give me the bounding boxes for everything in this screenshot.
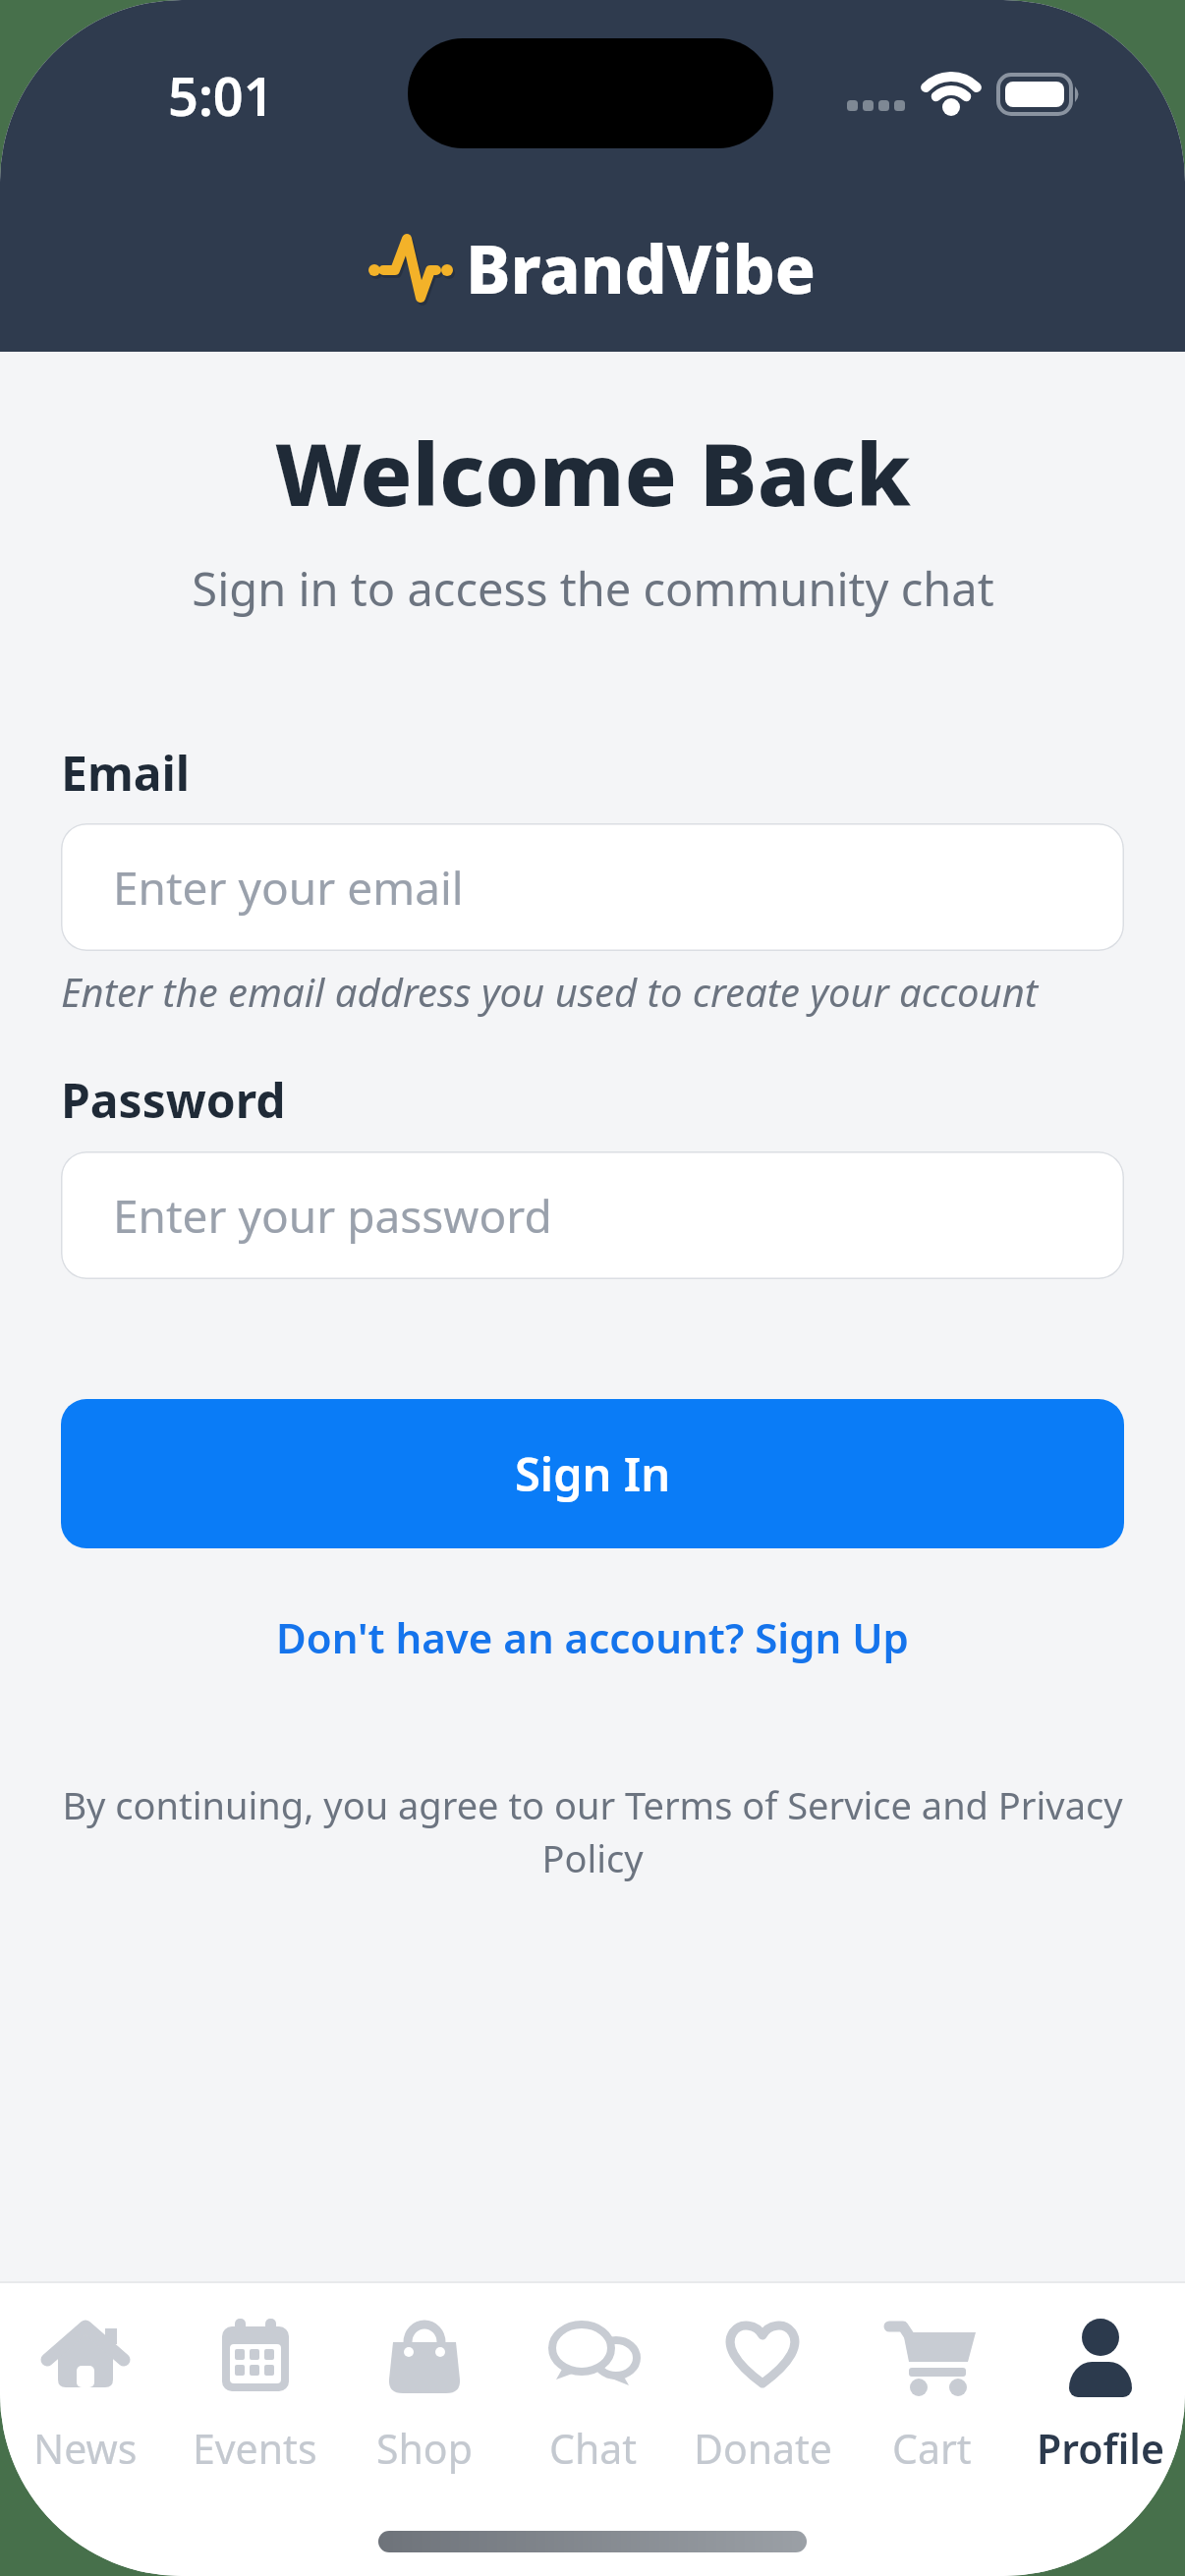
- staticText: Password: [61, 1068, 286, 1127]
- staticText: Welcome Back: [275, 414, 911, 532]
- button[interactable]: Enter your password: [61, 1151, 1124, 1279]
- staticText: BrandVibe: [466, 222, 817, 313]
- staticText: Donate: [694, 2421, 832, 2476]
- staticText: Email: [61, 741, 191, 800]
- staticText: By continuing, you agree to our Terms of…: [62, 1779, 1123, 1830]
- button[interactable]: Events: [170, 2319, 340, 2476]
- staticText: Sign In: [515, 1442, 671, 1505]
- staticText: Events: [193, 2421, 317, 2476]
- staticText: Enter the email address you used to crea…: [61, 965, 1039, 1018]
- staticText: Enter your password: [113, 1185, 552, 1247]
- staticText: Profile: [1037, 2421, 1164, 2476]
- button[interactable]: Enter your email: [61, 823, 1124, 951]
- staticText: 5:01: [168, 59, 274, 130]
- staticText: Shop: [376, 2421, 473, 2476]
- button[interactable]: Donate: [678, 2319, 847, 2476]
- button[interactable]: Don't have an account? Sign Up: [276, 1609, 909, 1665]
- button[interactable]: Chat: [509, 2319, 678, 2476]
- staticText: Sign in to access the community chat: [192, 557, 994, 620]
- staticText: Chat: [549, 2421, 638, 2476]
- button[interactable]: News: [0, 2319, 170, 2476]
- button[interactable]: Shop: [340, 2319, 509, 2476]
- staticText: Enter your email: [113, 857, 464, 919]
- staticText: Cart: [892, 2421, 972, 2476]
- button[interactable]: Profile: [1016, 2319, 1185, 2476]
- button[interactable]: Sign In: [61, 1399, 1124, 1548]
- button[interactable]: Cart: [847, 2319, 1016, 2476]
- staticText: News: [33, 2421, 138, 2476]
- staticText: Policy: [541, 1832, 644, 1883]
